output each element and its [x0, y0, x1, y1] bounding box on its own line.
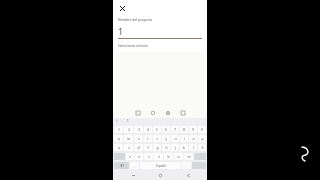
staticText: Nombre del proyecto: [118, 17, 153, 22]
button[interactable]: k: [180, 144, 188, 151]
staticText: q: [117, 136, 120, 141]
staticText: j: [175, 145, 176, 150]
staticText: 3: [138, 127, 140, 132]
button[interactable]: u: [171, 135, 179, 142]
staticText: h: [165, 145, 168, 150]
staticText: m: [187, 154, 191, 159]
button[interactable]: i: [180, 135, 188, 142]
button[interactable]: t: [153, 135, 161, 142]
staticText: 5: [156, 127, 158, 132]
button[interactable]: 4: [144, 126, 152, 133]
staticText: ñ: [201, 145, 204, 150]
button[interactable]: l: [189, 144, 197, 151]
staticText: k: [183, 145, 185, 150]
staticText: a: [118, 145, 120, 150]
staticText: Español: [156, 164, 166, 168]
button[interactable]: 5: [153, 126, 161, 133]
button[interactable]: w: [124, 135, 133, 142]
staticText: 0: [201, 127, 203, 132]
staticText: o: [192, 136, 195, 141]
button[interactable]: v: [154, 153, 163, 160]
staticText: c: [148, 154, 150, 159]
button[interactable]: Texto: [178, 108, 188, 118]
button[interactable]: .: [182, 162, 191, 169]
staticText: 9: [192, 127, 194, 132]
staticText: p: [201, 136, 204, 141]
button[interactable]: e: [134, 135, 143, 142]
button[interactable]: d: [134, 144, 143, 151]
button[interactable]: 6: [162, 126, 170, 133]
button[interactable]: o: [189, 135, 197, 142]
button[interactable]: f: [144, 144, 152, 151]
staticText: y: [165, 136, 167, 141]
staticText: 1: [127, 119, 129, 123]
button[interactable]: 1: [114, 126, 123, 133]
button[interactable]: Cerrar: [118, 4, 126, 12]
button[interactable]: b: [164, 153, 173, 160]
button[interactable]: ñ: [198, 144, 206, 151]
staticText: 7: [174, 127, 176, 132]
staticText: d: [137, 145, 140, 150]
button[interactable]: Inicio: [152, 171, 168, 180]
button[interactable]: Recientes: [125, 171, 141, 180]
button[interactable]: 7: [171, 126, 179, 133]
button[interactable]: j: [171, 144, 179, 151]
button[interactable]: 3: [134, 126, 143, 133]
staticText: 8: [183, 127, 185, 132]
staticText: i: [184, 136, 185, 141]
button[interactable]: ,: [130, 162, 139, 169]
staticText: 4: [147, 127, 149, 132]
staticText: 1: [118, 127, 120, 132]
staticText: s: [128, 145, 130, 150]
staticText: b: [167, 154, 170, 159]
button[interactable]: Espacio: [140, 162, 181, 169]
button[interactable]: c: [144, 153, 153, 160]
button[interactable]: 0: [198, 126, 206, 133]
staticText: ,: [134, 163, 135, 168]
button[interactable]: a: [114, 144, 123, 151]
button[interactable]: 8: [180, 126, 188, 133]
button[interactable]: 2: [124, 126, 133, 133]
staticText: .: [186, 163, 187, 168]
staticText: r: [147, 136, 149, 141]
button[interactable]: y: [162, 135, 170, 142]
button[interactable]: p: [198, 135, 206, 142]
staticText: 2: [128, 127, 130, 132]
staticText: e: [138, 136, 140, 141]
button[interactable]: g: [153, 144, 161, 151]
button[interactable]: x: [135, 153, 143, 160]
staticText: 6: [165, 127, 167, 132]
button[interactable]: n: [174, 153, 183, 160]
staticText: v: [158, 154, 160, 159]
staticText: f: [147, 145, 149, 150]
button[interactable]: Atrás: [180, 171, 196, 180]
staticText: x: [138, 154, 140, 159]
button[interactable]: q: [114, 135, 123, 142]
staticText: <: [116, 119, 118, 123]
staticText: 1: [118, 25, 124, 37]
staticText: !#1: [120, 164, 124, 168]
button[interactable]: Símbolos: [114, 162, 129, 169]
staticText: Seleccionar artículo: [118, 44, 148, 48]
staticText: g: [156, 145, 159, 150]
button[interactable]: r: [144, 135, 152, 142]
button[interactable]: Emoji: [148, 108, 158, 118]
button[interactable]: Portapapeles: [133, 108, 143, 118]
button[interactable]: 9: [189, 126, 197, 133]
staticText: u: [174, 136, 177, 141]
staticText: w: [127, 136, 130, 141]
button[interactable]: m: [184, 153, 193, 160]
staticText: t: [156, 136, 158, 141]
staticText: z: [129, 154, 131, 159]
button[interactable]: z: [126, 153, 134, 160]
staticText: l: [193, 145, 194, 150]
button[interactable]: h: [162, 144, 170, 151]
staticText: n: [177, 154, 180, 159]
button[interactable]: Ajustes: [163, 108, 173, 118]
button[interactable]: s: [124, 144, 133, 151]
